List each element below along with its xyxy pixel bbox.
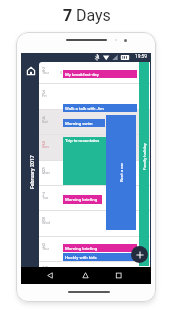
button[interactable] [106,115,136,230]
button[interactable]: Home [27,67,35,75]
staticText: 9 [42,242,46,248]
staticText: 5 [42,140,46,146]
staticText: 3 [42,89,46,95]
staticText: Morning briefing [65,246,98,251]
staticText: Sat [42,119,48,124]
staticText: Mon [42,170,50,175]
staticText: Trip to mountains [65,138,100,143]
button[interactable]: Add event [131,246,148,263]
staticText: Wed [42,220,50,225]
staticText: Thu [42,70,49,75]
button[interactable]: Morning briefing [63,244,137,252]
staticText: 10 [42,265,49,267]
staticText: Fri [42,93,47,98]
button[interactable]: Morning briefing [63,195,102,204]
button[interactable] [139,62,149,266]
staticText: Morning briefing [65,197,98,202]
staticText: 6 [42,166,46,172]
button[interactable]: Walk a talk with Jim [63,104,137,112]
staticText: Walk a talk with Jim [65,106,104,111]
staticText: Thu [42,246,49,251]
staticText: Tue [42,195,49,200]
staticText: 19:59 [135,54,147,60]
button[interactable]: Trip to mountains [63,137,106,185]
staticText: Sun [42,144,49,149]
staticText: 2 [42,66,46,72]
staticText: Rent a car [119,163,124,182]
staticText: 7 [42,191,46,197]
staticText: 8 [42,216,46,222]
staticText: Hockly with kids [65,255,97,260]
staticText: Family holiday [142,143,147,170]
staticText: Morning swim [65,121,93,126]
staticText: 8 [60,71,62,75]
staticText: 7 Days [63,6,111,25]
button[interactable]: My breakfast-day [63,70,137,78]
button[interactable]: Hockly with kids [63,253,137,261]
staticText: 7 [63,6,73,25]
button[interactable]: Morning swim [63,119,105,127]
staticText: My breakfast-day [65,72,99,77]
staticText: February 2017 [29,155,35,189]
staticText: 4 [42,115,46,121]
